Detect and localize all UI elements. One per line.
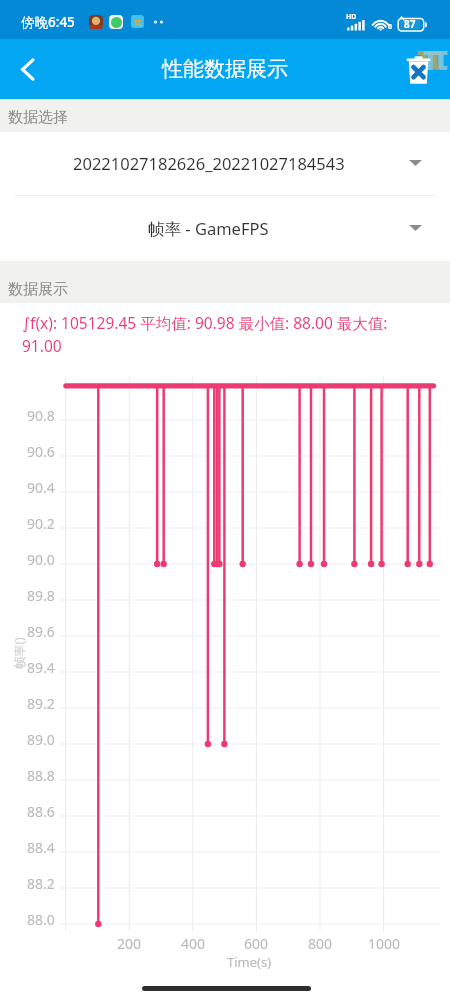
staticText: 87 [404, 17, 416, 31]
staticText: 200 [117, 934, 142, 953]
staticText: 88.6 [27, 802, 55, 821]
staticText: 89.6 [27, 622, 55, 641]
staticText: 帧率 - GameFPS [148, 217, 269, 240]
staticText: 90.8 [27, 406, 55, 425]
staticText: 性能数据展示 [162, 56, 288, 82]
staticText: π [417, 34, 443, 80]
staticText: 88.8 [27, 766, 55, 785]
staticText: 20221027182626_20221027184543 [73, 152, 345, 174]
staticText: 90.2 [27, 514, 55, 533]
staticText: 90.6 [27, 442, 55, 461]
staticText: 帧率() [10, 636, 26, 668]
staticText: 数据展示 [8, 280, 68, 299]
staticText: 88.4 [27, 838, 55, 857]
staticText: 89.0 [27, 730, 55, 749]
button[interactable]: 帧率 - GameFPS [0, 196, 417, 261]
staticText: 89.2 [27, 694, 55, 713]
staticText: 1000 [368, 934, 401, 953]
button[interactable]: Delete [396, 48, 440, 92]
staticText: 90.4 [27, 478, 55, 497]
staticText: 400 [181, 934, 206, 953]
staticText: 600 [244, 934, 269, 953]
staticText: π [134, 15, 142, 28]
staticText: 90.0 [27, 550, 55, 569]
staticText: 89.8 [27, 586, 55, 605]
staticText: 89.4 [27, 658, 55, 677]
staticText: 800 [308, 934, 333, 953]
staticText: 88.0 [27, 910, 55, 929]
staticText: HD [346, 12, 357, 22]
staticText: ∫f(x): 105129.45 平均值: 90.98 最小值: 88.00 最… [22, 312, 450, 357]
button[interactable]: 20221027182626_20221027184543 [0, 131, 417, 195]
staticText: 数据选择 [8, 108, 68, 127]
button[interactable]: Back [0, 42, 54, 96]
staticText: 88.2 [27, 874, 55, 893]
staticText: 傍晚6:45 [21, 13, 75, 31]
staticText: 6 [388, 22, 393, 32]
staticText: π [423, 34, 449, 80]
staticText: Time(s) [227, 953, 272, 971]
